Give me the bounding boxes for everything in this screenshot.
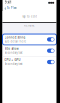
staticText: Remove — [24, 24, 35, 27]
staticText: Connect string — [4, 36, 25, 39]
staticText: To Plan — [7, 6, 17, 10]
staticText: 9:41 — [5, 1, 12, 4]
staticText: Title allow — [4, 47, 18, 50]
staticText: ●●● — [48, 1, 54, 4]
staticText: CPU + GPU — [4, 58, 20, 62]
staticText: Secondary text — [4, 62, 22, 66]
button[interactable]: ‹ — [4, 4, 17, 12]
staticText: Tap to edit — [22, 15, 37, 18]
staticText: Secondary text — [4, 51, 22, 54]
staticText: ‹ — [4, 4, 6, 12]
staticText: Sub detail here — [4, 40, 26, 43]
